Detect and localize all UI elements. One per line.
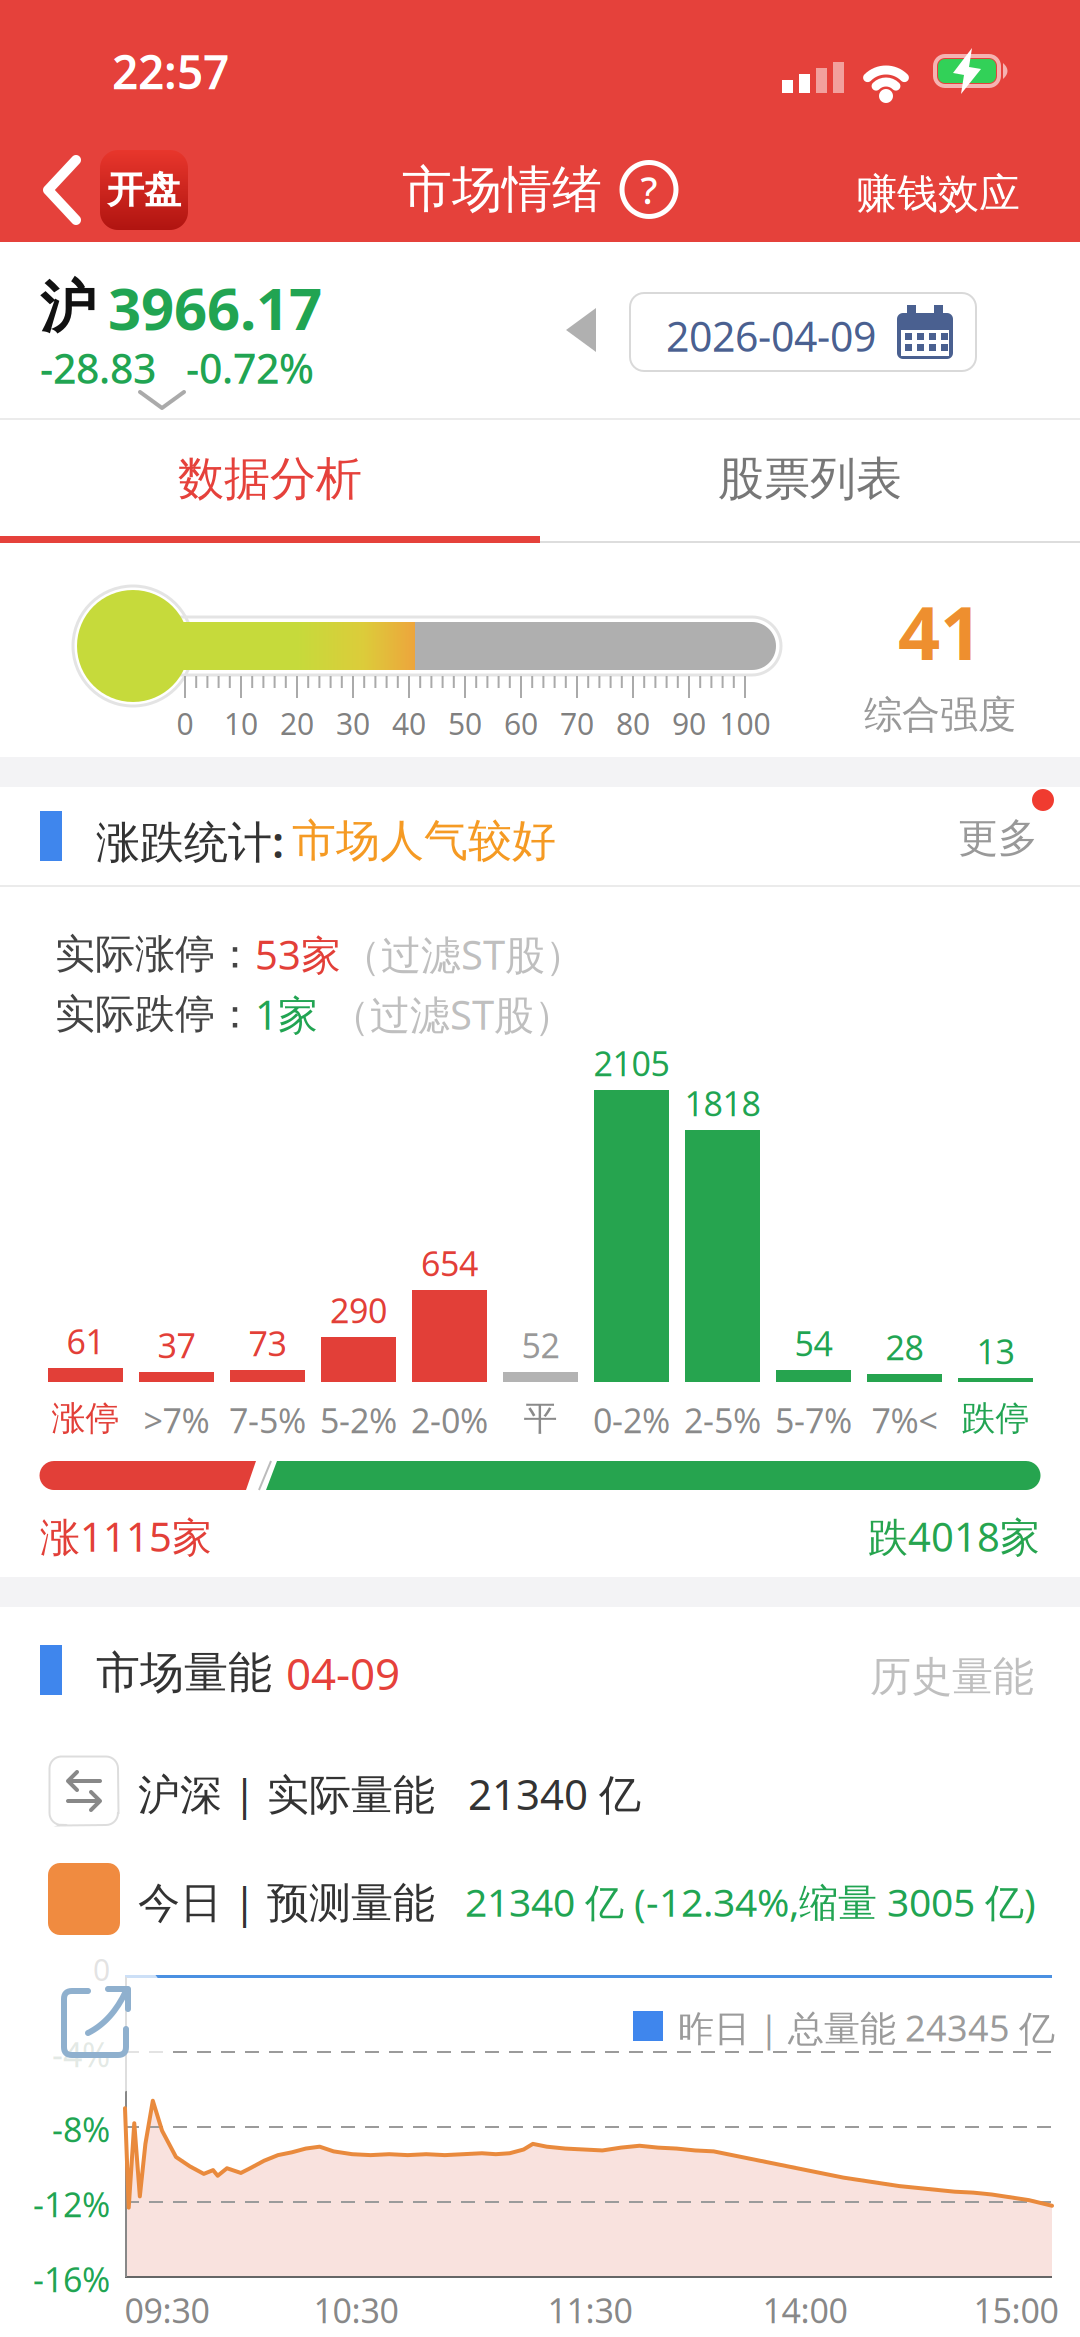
- staticText: -4%: [52, 2031, 110, 2077]
- staticText: 赚钱效应: [856, 168, 1020, 220]
- staticText: 5-7%: [775, 1397, 852, 1443]
- staticText: 跌4018家: [868, 1509, 1040, 1563]
- staticText: 更多: [958, 813, 1038, 863]
- staticText: 市场量能: [96, 1645, 272, 1701]
- staticText: 涨停: [51, 1397, 119, 1440]
- button[interactable]: 返回 开盘: [40, 150, 250, 250]
- staticText: 数据分析: [178, 450, 362, 508]
- staticText: 沪: [40, 272, 96, 343]
- staticText: >7%: [143, 1397, 209, 1443]
- button[interactable]: 市场情绪 帮助: [402, 158, 680, 221]
- staticText: 21340 亿 (-12.34%,缩量 3005 亿): [435, 1875, 1036, 1928]
- button[interactable]: 市场量能: [0, 1607, 700, 1717]
- staticText: 涨1115家: [40, 1509, 212, 1563]
- staticText: 涨跌统计:: [96, 811, 284, 871]
- staticText: 28: [885, 1324, 923, 1370]
- staticText: 53家: [255, 927, 341, 981]
- staticText: 70: [560, 703, 594, 744]
- staticText: 52: [521, 1322, 559, 1368]
- staticText: 市场情绪: [402, 158, 602, 221]
- staticText: 开盘: [107, 167, 181, 213]
- staticText: 37: [157, 1322, 195, 1368]
- staticText: 54: [794, 1320, 832, 1366]
- staticText: 10:30: [313, 2287, 398, 2333]
- button[interactable]: 股票列表: [540, 420, 1080, 545]
- staticText: 04-09: [286, 1643, 400, 1703]
- staticText: 7-5%: [229, 1397, 306, 1443]
- staticText: 跌停: [961, 1397, 1029, 1440]
- staticText: 平: [523, 1397, 557, 1440]
- staticText: 20: [280, 703, 314, 744]
- staticText: 2105: [593, 1040, 669, 1086]
- staticText: （过滤ST股）: [341, 927, 585, 981]
- button[interactable]: 上证指数: [0, 242, 400, 420]
- staticText: 80: [616, 703, 650, 744]
- staticText: 10: [224, 703, 258, 744]
- staticText: 0: [176, 703, 193, 744]
- staticText: 290: [330, 1287, 387, 1333]
- staticText: 7%<: [871, 1397, 937, 1443]
- staticText: 21340 亿: [435, 1765, 641, 1822]
- button[interactable]: 选择日期: [629, 292, 977, 372]
- staticText: 3966.17: [108, 268, 322, 347]
- staticText: 09:30: [124, 2287, 209, 2333]
- button[interactable]: 前一天: [566, 308, 596, 352]
- staticText: 市场人气较好: [292, 813, 556, 869]
- staticText: 15:00: [973, 2287, 1058, 2333]
- staticText: 1818: [684, 1080, 760, 1126]
- staticText: 11:30: [547, 2287, 632, 2333]
- staticText: 14:00: [762, 2287, 847, 2333]
- button[interactable]: 历史量能: [870, 1651, 1034, 1703]
- staticText: 30: [336, 703, 370, 744]
- staticText: 历史量能: [870, 1651, 1034, 1703]
- button[interactable]: 数据分析: [0, 420, 540, 545]
- staticText: 50: [448, 703, 482, 744]
- staticText: -0.72%: [186, 340, 314, 396]
- staticText: ?: [640, 164, 657, 215]
- staticText: 2-5%: [684, 1397, 761, 1443]
- button[interactable]: 赚钱效应: [856, 168, 1020, 220]
- staticText: 13: [976, 1328, 1014, 1374]
- staticText: 41: [898, 581, 982, 682]
- staticText: 22:57: [112, 40, 229, 103]
- staticText: 5-2%: [320, 1397, 397, 1443]
- staticText: 73: [248, 1320, 286, 1366]
- staticText: 0: [93, 1949, 110, 1990]
- staticText: 61: [66, 1318, 104, 1364]
- staticText: 60: [504, 703, 538, 744]
- button[interactable]: 涨跌统计:: [0, 787, 800, 885]
- staticText: （过滤ST股）: [318, 987, 574, 1041]
- staticText: 实际涨停：: [55, 929, 255, 979]
- staticText: 1家: [255, 987, 318, 1041]
- staticText: -16%: [33, 2256, 110, 2302]
- button[interactable]: 分享: [22, 1947, 172, 2097]
- button[interactable]: 更多: [958, 789, 1080, 859]
- staticText: 0-2%: [593, 1397, 670, 1443]
- staticText: -28.83: [40, 340, 156, 396]
- staticText: 40: [392, 703, 426, 744]
- staticText: 2026-04-09: [666, 308, 876, 364]
- staticText: 100: [719, 703, 770, 744]
- staticText: 90: [672, 703, 706, 744]
- staticText: 股票列表: [718, 450, 902, 508]
- staticText: 综合强度: [864, 691, 1016, 739]
- staticText: 实际跌停：: [55, 989, 255, 1039]
- staticText: 654: [421, 1240, 478, 1286]
- staticText: -8%: [52, 2106, 110, 2152]
- staticText: -12%: [33, 2181, 110, 2227]
- staticText: 昨日 | 总量能 24345 亿: [678, 2003, 1055, 2052]
- staticText: 2-0%: [411, 1397, 488, 1443]
- staticText: 沪深 | 实际量能: [138, 1765, 435, 1822]
- staticText: 今日 | 预测量能: [138, 1873, 435, 1930]
